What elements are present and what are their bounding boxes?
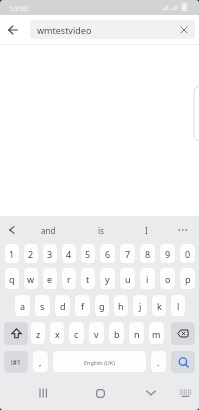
staticText: English (UK)	[84, 359, 115, 366]
button[interactable]: a	[15, 295, 30, 317]
staticText: j	[139, 300, 142, 312]
button[interactable]	[171, 351, 195, 373]
button[interactable]: English (UK)	[53, 351, 146, 373]
staticText: ,	[39, 356, 42, 368]
staticText: 10:00	[9, 3, 29, 13]
button[interactable]	[175, 380, 195, 406]
staticText: m	[152, 328, 161, 340]
button[interactable]	[4, 322, 28, 345]
button[interactable]: !#1	[4, 351, 28, 373]
button[interactable]: wmtestvideo	[30, 20, 195, 39]
staticText: 6	[105, 248, 111, 260]
button[interactable]: c	[69, 322, 84, 345]
staticText: 2	[28, 248, 34, 260]
button[interactable]: u	[120, 268, 135, 290]
staticText: 8	[145, 248, 151, 260]
staticText: v	[94, 328, 99, 340]
staticText: e	[47, 273, 53, 285]
staticText: 7	[125, 248, 131, 260]
button[interactable]: 8	[140, 244, 155, 264]
staticText: l	[177, 300, 180, 312]
staticText: d	[60, 300, 66, 312]
staticText: n	[134, 328, 140, 340]
button[interactable]: 2	[24, 244, 38, 264]
staticText: i	[146, 273, 149, 285]
button[interactable]: k	[152, 295, 166, 317]
button[interactable]	[0, 15, 26, 44]
staticText: c	[74, 328, 79, 340]
button[interactable]: 0	[180, 244, 195, 264]
staticText: I	[145, 225, 148, 236]
button[interactable]	[174, 220, 192, 240]
button[interactable]: 4	[62, 244, 76, 264]
button[interactable]: 3	[43, 244, 57, 264]
button[interactable]: p	[180, 268, 195, 290]
staticText: t	[86, 273, 90, 285]
button[interactable]: l	[171, 295, 185, 317]
button[interactable]: y	[100, 268, 115, 290]
staticText: u	[125, 273, 131, 285]
button[interactable]: m	[149, 322, 164, 345]
staticText: o	[165, 273, 171, 285]
staticText: w	[27, 273, 35, 285]
staticText: 0	[185, 248, 191, 260]
staticText: 9	[165, 248, 171, 260]
button[interactable]: w	[24, 268, 38, 290]
staticText: .	[157, 356, 160, 368]
button[interactable]: v	[89, 322, 104, 345]
button[interactable]: 7	[120, 244, 135, 264]
staticText: r	[67, 273, 71, 285]
staticText: g	[99, 300, 105, 312]
button[interactable]: and	[28, 216, 68, 244]
button[interactable]: r	[62, 268, 76, 290]
button[interactable]	[30, 380, 56, 406]
button[interactable]: f	[75, 295, 90, 317]
staticText: 4	[66, 248, 72, 260]
button[interactable]	[171, 322, 195, 345]
button[interactable]	[173, 20, 195, 39]
button[interactable]: o	[160, 268, 175, 290]
staticText: a	[20, 300, 26, 312]
staticText: b	[114, 328, 120, 340]
button[interactable]: b	[109, 322, 124, 345]
button[interactable]: e	[43, 268, 57, 290]
button[interactable]: s	[35, 295, 50, 317]
button[interactable]	[0, 216, 24, 244]
button[interactable]: 6	[100, 244, 115, 264]
staticText: 5	[85, 248, 91, 260]
staticText: s	[40, 300, 45, 312]
staticText: p	[185, 273, 191, 285]
button[interactable]: I	[126, 216, 166, 244]
staticText: f	[81, 300, 85, 312]
button[interactable]	[86, 380, 114, 406]
button[interactable]: q	[5, 268, 19, 290]
staticText: wmtestvideo	[37, 24, 92, 36]
button[interactable]: h	[114, 295, 128, 317]
staticText: !#1	[11, 358, 21, 367]
button[interactable]: n	[129, 322, 144, 345]
staticText: is	[98, 225, 104, 236]
staticText: and	[41, 225, 56, 236]
staticText: k	[157, 300, 162, 312]
staticText: q	[9, 273, 15, 285]
button[interactable]: .	[151, 351, 166, 373]
staticText: 3	[47, 248, 53, 260]
staticText: z	[36, 328, 41, 340]
button[interactable]: z	[31, 322, 45, 345]
button[interactable]: 1	[5, 244, 19, 264]
button[interactable]: j	[133, 295, 147, 317]
button[interactable]	[137, 380, 165, 406]
button[interactable]: x	[50, 322, 64, 345]
staticText: h	[118, 300, 124, 312]
button[interactable]: ,	[33, 351, 48, 373]
button[interactable]: is	[81, 216, 121, 244]
staticText: x	[55, 328, 60, 340]
staticText: 1	[9, 248, 15, 260]
button[interactable]: g	[95, 295, 109, 317]
button[interactable]: 9	[160, 244, 175, 264]
staticText: y	[105, 273, 110, 285]
button[interactable]: 5	[81, 244, 95, 264]
button[interactable]: d	[55, 295, 70, 317]
button[interactable]: i	[140, 268, 155, 290]
button[interactable]: t	[81, 268, 95, 290]
